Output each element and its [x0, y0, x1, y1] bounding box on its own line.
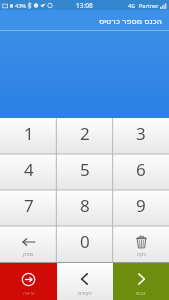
button[interactable]: 4 [0, 154, 57, 190]
button[interactable]: הבא [113, 263, 169, 300]
staticText: הכנס מספר כרטיס [99, 15, 163, 26]
staticText: Partner [139, 2, 159, 9]
button[interactable]: הקודם [57, 263, 113, 300]
staticText: מחק [23, 251, 34, 257]
staticText: 6 [136, 158, 146, 181]
button[interactable]: Backspace [0, 226, 57, 262]
button[interactable]: יציאה [0, 263, 57, 300]
staticText: יציאה [23, 290, 35, 296]
button[interactable]: 3 [113, 118, 169, 154]
button[interactable]: 2 [57, 118, 113, 154]
button[interactable]: 1 [0, 118, 57, 154]
staticText: 1 [24, 122, 34, 145]
button[interactable]: 0 [57, 226, 113, 262]
button[interactable]: 6 [113, 154, 169, 190]
staticText: 0 [80, 230, 90, 253]
button[interactable]: Clear [113, 226, 169, 262]
button[interactable]: 5 [57, 154, 113, 190]
button[interactable]: 9 [113, 190, 169, 226]
button[interactable]: 8 [57, 190, 113, 226]
staticText: הקודם [78, 290, 93, 296]
staticText: 4G [128, 2, 136, 9]
staticText: 7 [24, 194, 34, 217]
staticText: 4 [24, 158, 34, 181]
button[interactable]: 7 [0, 190, 57, 226]
staticText: נקה [137, 251, 146, 257]
staticText: 9 [136, 194, 146, 217]
staticText: הבא [136, 290, 146, 296]
staticText: 3 [136, 122, 146, 145]
staticText: 8 [80, 194, 90, 217]
staticText: 43% [15, 2, 26, 9]
staticText: 2 [80, 122, 90, 145]
staticText: 5 [80, 158, 90, 181]
staticText: 13:08 [76, 1, 93, 10]
